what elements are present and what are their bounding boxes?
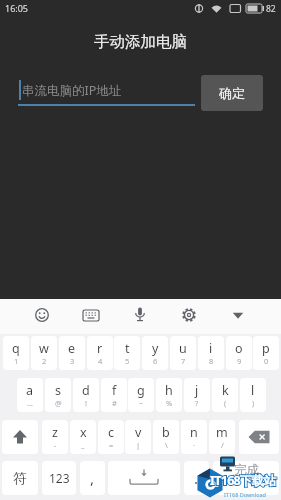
button[interactable]: s [45,378,71,412]
button[interactable]: a [17,378,43,412]
button[interactable]: b [153,420,179,454]
staticText: . [194,468,199,488]
button[interactable]: c [98,420,124,454]
staticText: p [262,340,270,357]
button[interactable]: . [184,461,209,495]
button[interactable]: q [3,336,29,370]
staticText: u [179,340,187,357]
staticText: c [108,424,115,441]
staticText: w [39,340,49,357]
staticText: e [68,340,76,357]
staticText: @ [55,398,62,408]
staticText: % [166,398,173,408]
staticText: IT168下载站 [210,472,276,489]
staticText: 2 [42,356,47,366]
button[interactable] [77,301,105,329]
button[interactable]: o [226,336,252,370]
button[interactable]: 确定 [201,75,263,111]
staticText: 3 [70,356,75,366]
staticText: k [222,382,229,399]
button[interactable]: 符 [2,461,38,495]
staticText: 8 [209,356,214,366]
staticText: f [112,382,117,399]
button[interactable]: h [156,378,182,412]
staticText: ? [195,398,199,408]
button[interactable]: k [212,378,238,412]
staticText: 9 [237,356,242,366]
staticText: b [162,424,170,441]
staticText: - [54,440,57,450]
button[interactable] [175,301,203,329]
button[interactable] [239,420,279,454]
staticText: 7 [181,356,186,366]
staticText: 6 [153,356,158,366]
staticText: 串流电脑的IP地址 [22,82,122,99]
button[interactable]: f [101,378,127,412]
staticText: ) [252,398,255,408]
button[interactable]: e [59,336,85,370]
button[interactable]: u [170,336,196,370]
button[interactable]: r [87,336,113,370]
staticText: , [90,468,95,488]
staticText: 82 [266,3,276,15]
button[interactable] [28,301,56,329]
button[interactable]: x [70,420,96,454]
button[interactable]: , [80,461,105,495]
staticText: IT168 Download [224,491,266,498]
button[interactable]: y [142,336,168,370]
button[interactable]: 123 [42,461,76,495]
staticText: 4 [98,356,103,366]
staticText: 1 [14,356,19,366]
staticText: o [235,340,243,357]
staticText: d [82,382,90,399]
staticText: 0 [264,356,269,366]
staticText: ( [224,398,227,408]
staticText: r [97,340,103,357]
staticText: v [135,424,142,441]
staticText: _ [81,440,85,450]
button[interactable]: v [125,420,151,454]
button[interactable]: i [198,336,224,370]
button[interactable]: p [253,336,279,370]
staticText: # [112,398,117,408]
staticText: | [136,440,141,450]
staticText: ~ [139,398,144,408]
button[interactable]: l [240,378,266,412]
button[interactable]: j [184,378,210,412]
button[interactable]: g [128,378,154,412]
staticText: ! [85,398,88,408]
staticText: 123 [49,470,70,486]
staticText: 手动添加电脑 [0,32,281,52]
staticText: t [125,340,130,357]
staticText: q [12,340,20,357]
button[interactable] [224,301,252,329]
staticText: i [209,340,213,357]
staticText: j [195,382,199,399]
button[interactable]: t [114,336,140,370]
staticText: … [27,398,33,408]
staticText: g [137,382,145,399]
staticText: l [251,382,255,399]
button[interactable]: d [73,378,99,412]
staticText: y [152,340,159,357]
button[interactable] [126,301,154,329]
button[interactable]: w [31,336,57,370]
staticText: 5 [125,356,130,366]
staticText: / [221,440,224,450]
staticText: h [165,382,173,399]
staticText: z [52,424,58,441]
staticText: 确定 [219,85,245,101]
button[interactable]: z [42,420,68,454]
button[interactable] [108,461,180,495]
staticText: n [190,424,198,441]
button[interactable] [2,420,38,454]
staticText: s [55,382,61,399]
button[interactable]: 完成 [213,461,279,495]
staticText: = [109,440,114,450]
staticText: a [26,382,34,399]
staticText: 16:05 [5,2,29,14]
staticText: m [216,424,228,441]
button[interactable]: n [181,420,207,454]
staticText: 符 [13,470,27,487]
button[interactable]: m [209,420,235,454]
